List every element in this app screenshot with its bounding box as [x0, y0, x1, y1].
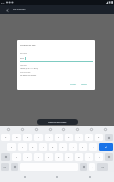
staticText: Fit width to height [20, 74, 37, 77]
button[interactable]: r [34, 134, 43, 141]
button[interactable]: Toolbar item 1 [17, 126, 28, 133]
button[interactable]: Recent apps [82, 172, 98, 182]
button[interactable]: Toolbar item 6 [86, 126, 97, 133]
staticText: h [62, 146, 64, 149]
staticText: Letter (8.5 x 11 inch) [20, 67, 38, 70]
button[interactable]: Navigate up [4, 7, 10, 13]
button[interactable]: CREATE [80, 82, 88, 86]
button[interactable]: Shift [1, 153, 10, 161]
button[interactable]: Create PDF from images [37, 119, 78, 125]
button[interactable]: Home [49, 172, 65, 182]
staticText: a [11, 146, 13, 149]
staticText: PDF manager [13, 8, 26, 11]
staticText: r [38, 136, 39, 139]
staticText: x [27, 156, 29, 159]
button[interactable]: o [85, 134, 93, 141]
button[interactable]: Symbols [1, 163, 9, 171]
staticText: Creation of PDF [20, 44, 36, 47]
staticText: j [73, 146, 74, 149]
button[interactable]: Toolbar item 0 [3, 126, 14, 133]
staticText: t [49, 136, 50, 139]
staticText: ↵ [105, 146, 107, 148]
button[interactable]: Delete [105, 153, 113, 161]
button[interactable]: y [55, 134, 63, 141]
staticText: g [52, 146, 54, 149]
staticText: ?123 [3, 166, 7, 168]
button[interactable]: s [18, 143, 27, 151]
button[interactable]: b [55, 153, 63, 161]
staticText: o [88, 136, 90, 139]
staticText: ?123 [101, 166, 105, 168]
button[interactable]: Enter [99, 143, 113, 151]
staticText: File name [20, 52, 27, 54]
button[interactable]: l [89, 143, 97, 151]
button[interactable]: Emoji [11, 163, 18, 171]
staticText: s [22, 146, 23, 149]
button[interactable]: u [65, 134, 73, 141]
button[interactable]: Toolbar item 3 [45, 126, 56, 133]
button[interactable]: w [12, 134, 21, 141]
staticText: q [5, 136, 7, 139]
staticText: w [16, 136, 18, 139]
button[interactable]: Toolbar item 2 [31, 126, 42, 133]
staticText: e [27, 136, 29, 139]
staticText: d [32, 146, 34, 149]
button[interactable]: ? [95, 153, 103, 161]
staticText: ! [89, 156, 90, 159]
staticText: CANCEL [70, 83, 77, 85]
staticText: CREATE [81, 83, 87, 85]
button[interactable]: t [45, 134, 53, 141]
staticText: l [93, 146, 94, 149]
staticText: i [79, 136, 80, 139]
staticText: f [43, 146, 44, 149]
staticText: y [58, 136, 60, 139]
button[interactable]: i [75, 134, 83, 141]
button[interactable]: p [95, 134, 103, 141]
staticText: m [78, 156, 80, 159]
button[interactable]: d [29, 143, 37, 151]
staticText: 9:41 [1, 2, 5, 4]
staticText: p [98, 136, 100, 139]
staticText: Scale to image [20, 71, 31, 73]
button[interactable]: CANCEL [69, 82, 78, 86]
staticText: Page size [20, 64, 27, 66]
button[interactable]: g [49, 143, 57, 151]
staticText: z [16, 156, 17, 159]
staticText: n [68, 156, 70, 159]
button[interactable]: n [65, 153, 73, 161]
button[interactable]: q [1, 134, 10, 141]
button[interactable]: a [7, 143, 16, 151]
button[interactable]: Language [97, 163, 108, 171]
button[interactable]: Toolbar item 7 [100, 126, 111, 133]
button[interactable]: Toolbar item 4 [58, 126, 69, 133]
button[interactable]: h [59, 143, 67, 151]
button[interactable]: v [45, 153, 53, 161]
button[interactable]: e [23, 134, 32, 141]
staticText: c [38, 156, 39, 159]
button[interactable]: c [34, 153, 43, 161]
button[interactable]: k [79, 143, 87, 151]
staticText: v [48, 156, 50, 159]
button[interactable]: Back [17, 172, 33, 182]
staticText: PDF [20, 57, 24, 60]
staticText: Create PDF from images [48, 121, 67, 123]
button[interactable]: Backspace [105, 134, 113, 141]
button[interactable]: Toolbar item 5 [72, 126, 83, 133]
staticText: ? [99, 156, 100, 159]
staticText: u [68, 136, 70, 139]
button[interactable]: m [75, 153, 83, 161]
button[interactable]: Settings [80, 163, 87, 171]
button[interactable]: f [39, 143, 47, 151]
staticText: . [92, 166, 93, 169]
button[interactable]: x [23, 153, 32, 161]
button[interactable]: z [12, 153, 21, 161]
button[interactable]: j [69, 143, 77, 151]
staticText: b [58, 156, 60, 159]
button[interactable]: ! [85, 153, 93, 161]
staticText: k [82, 146, 84, 149]
